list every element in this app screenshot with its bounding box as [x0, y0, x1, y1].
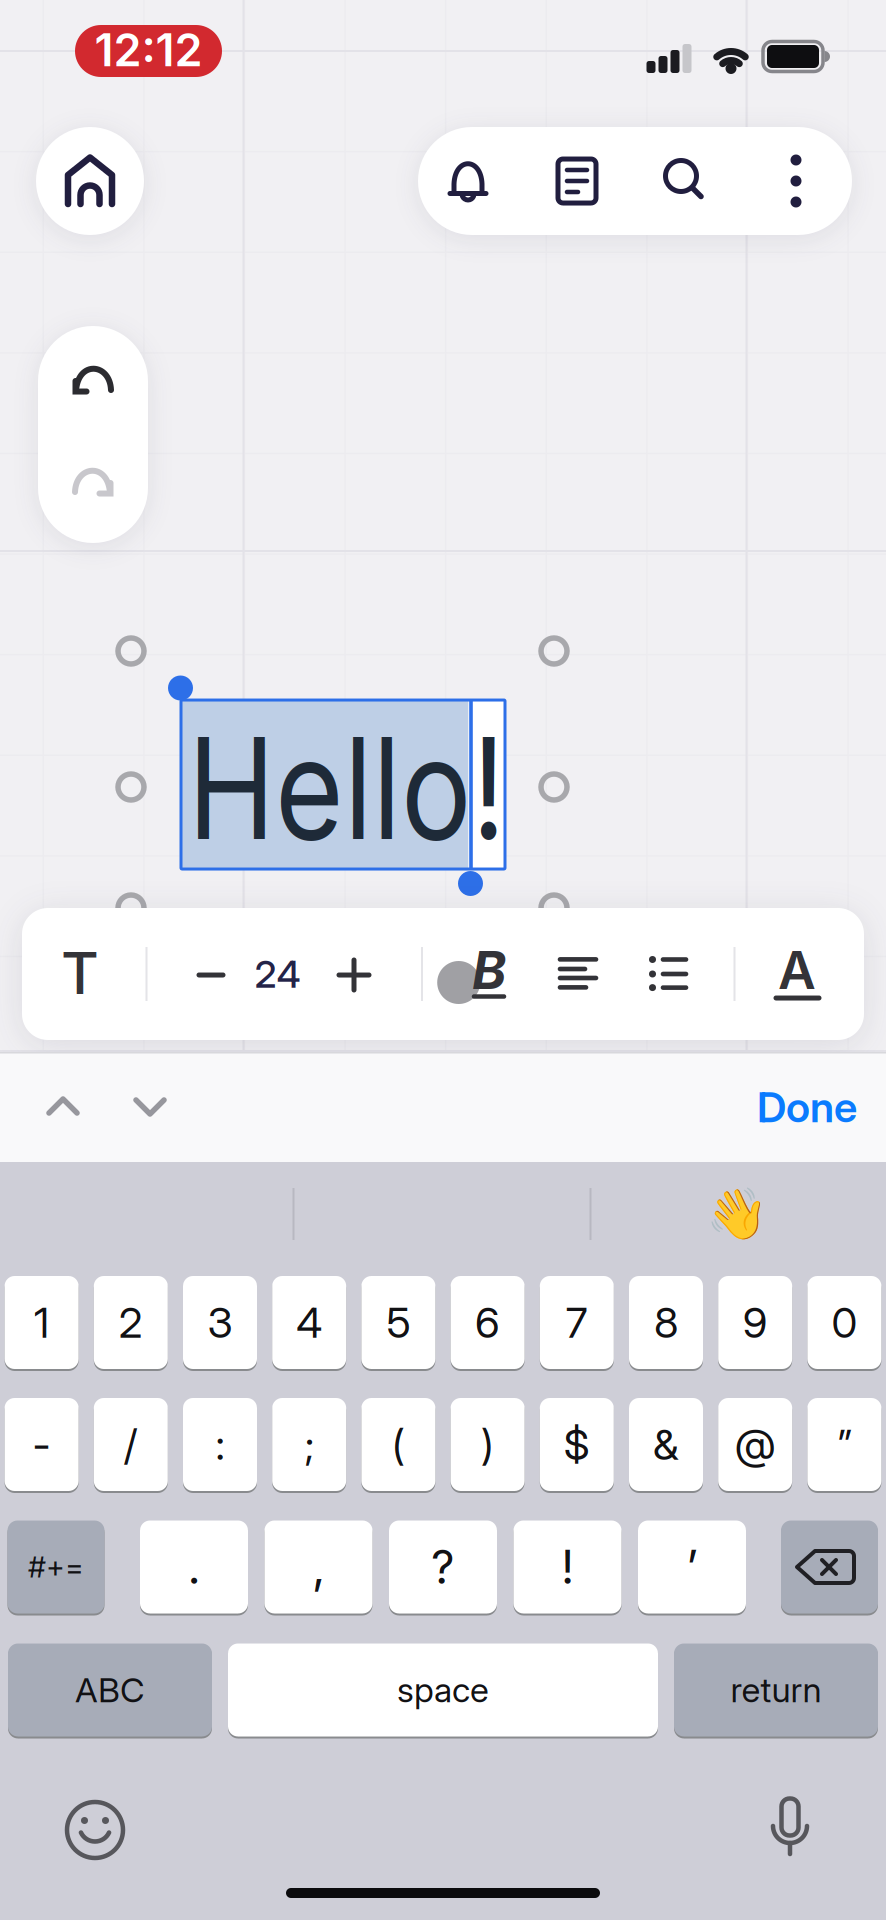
staticText: 4 [296, 1297, 322, 1348]
staticText: Done [757, 1082, 857, 1132]
staticText: 👋 [706, 1185, 768, 1243]
staticText: space [397, 1669, 489, 1710]
staticText: ) [481, 1419, 494, 1470]
staticText: 12:12 [94, 23, 202, 77]
staticText: 24 [254, 951, 300, 997]
staticText: 9 [743, 1297, 768, 1348]
staticText: A [778, 938, 816, 1001]
staticText: : [215, 1419, 224, 1470]
staticText: ” [837, 1419, 851, 1470]
staticText: #+= [28, 1549, 84, 1585]
staticText: ( [392, 1419, 405, 1470]
staticText: 6 [475, 1297, 500, 1348]
staticText: ABC [75, 1669, 145, 1710]
staticText: - [33, 1419, 51, 1470]
staticText: return [730, 1669, 821, 1710]
staticText: . [187, 1539, 200, 1595]
staticText: $ [564, 1419, 590, 1470]
staticText: 0 [831, 1297, 857, 1348]
staticText: B [472, 938, 506, 1001]
staticText: 5 [386, 1297, 410, 1348]
staticText: , [312, 1539, 325, 1595]
staticText: 7 [566, 1297, 588, 1348]
staticText: 2 [119, 1297, 143, 1348]
staticText: 3 [207, 1297, 232, 1348]
staticText: T [61, 938, 99, 1008]
staticText: ; [305, 1419, 314, 1470]
staticText: ’ [686, 1539, 698, 1595]
staticText: 8 [654, 1297, 678, 1348]
staticText: Hello! [157, 703, 535, 873]
staticText: 1 [34, 1297, 49, 1348]
staticText: ! [561, 1539, 574, 1595]
staticText: / [124, 1419, 138, 1470]
staticText: & [653, 1419, 679, 1470]
staticText: @ [735, 1419, 776, 1470]
staticText: ? [431, 1539, 455, 1595]
